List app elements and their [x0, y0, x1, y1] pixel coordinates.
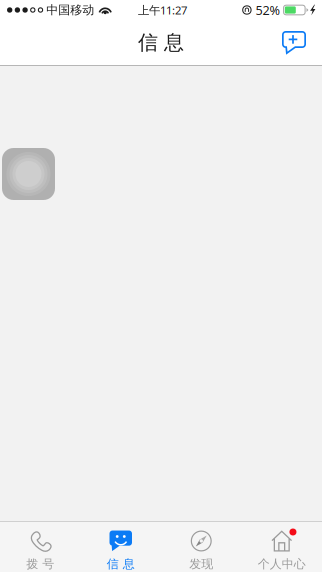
- button[interactable]: 拨 号: [0, 522, 80, 572]
- button[interactable]: 信 息: [80, 522, 161, 572]
- staticText: 拨 号: [26, 556, 54, 572]
- button[interactable]: New Message: [268, 21, 322, 64]
- staticText: 52%: [256, 1, 281, 19]
- staticText: 信 息: [138, 30, 184, 55]
- staticText: 信 息: [107, 556, 135, 572]
- staticText: 发现: [189, 556, 213, 572]
- staticText: 个人中心: [258, 556, 306, 572]
- staticText: 中国移动: [46, 2, 94, 17]
- button[interactable]: 发现: [161, 522, 241, 572]
- button[interactable]: 个人中心: [241, 522, 322, 572]
- staticText: 上午11:27: [138, 2, 187, 18]
